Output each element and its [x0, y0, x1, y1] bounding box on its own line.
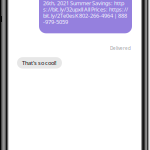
- staticText: That's so cool!: [22, 59, 57, 66]
- staticText: bit.ly/2Te0esK 802-266-4964 | 888: [43, 12, 127, 19]
- staticText: Delivered: [110, 45, 131, 51]
- staticText: -979-5059: [43, 18, 68, 25]
- staticText: s://bit.ly/32upxll All Prices: https://: [43, 6, 128, 13]
- staticText: 26th, 2021 Summer Savings: http: [43, 0, 124, 7]
